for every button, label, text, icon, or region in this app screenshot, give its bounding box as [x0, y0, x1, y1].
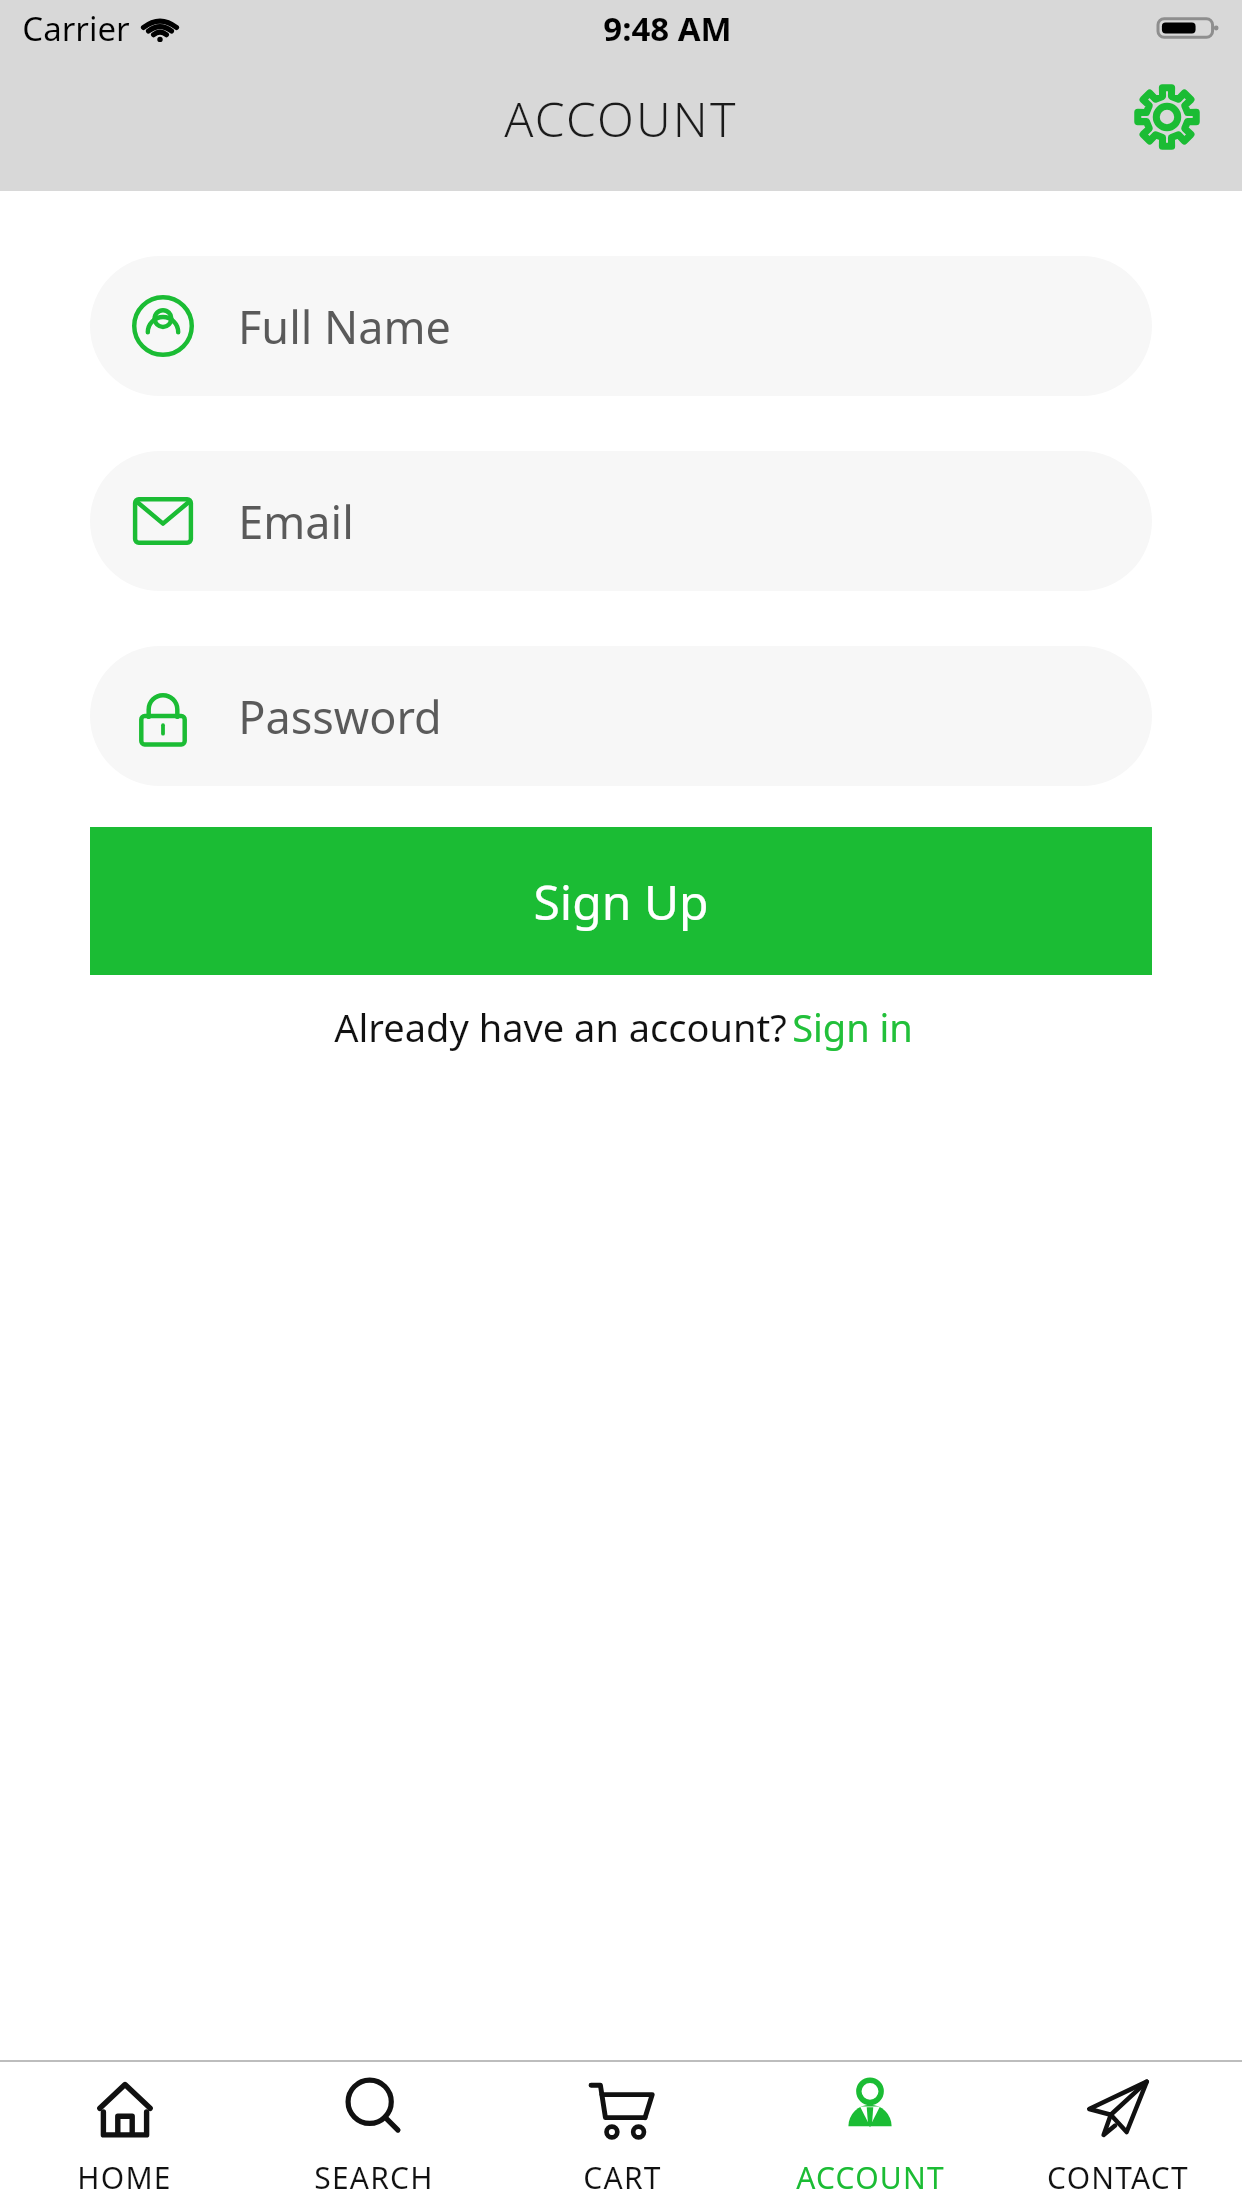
button[interactable]: Email — [90, 451, 1152, 591]
staticText: SEARCH — [314, 2157, 434, 2198]
staticText: Password — [238, 686, 442, 747]
staticText: HOME — [77, 2157, 172, 2198]
button[interactable]: CONTACT — [994, 2073, 1242, 2198]
staticText: Sign in — [792, 1001, 913, 1053]
staticText: Already have an account? — [329, 1001, 792, 1053]
staticText: Carrier — [22, 6, 130, 51]
staticText: Full Name — [238, 296, 451, 357]
button[interactable]: HOME — [0, 2073, 249, 2198]
button[interactable]: Full Name — [90, 256, 1152, 396]
staticText: ACCOUNT — [796, 2157, 945, 2198]
button[interactable]: Sign Up — [90, 827, 1152, 975]
staticText: CONTACT — [1047, 2157, 1189, 2198]
staticText: 9:48 AM — [603, 6, 732, 51]
staticText: Sign Up — [533, 869, 709, 934]
button[interactable]: SEARCH — [249, 2073, 498, 2198]
button[interactable]: Password — [90, 646, 1152, 786]
staticText: ACCOUNT — [504, 86, 738, 151]
button[interactable]: CART — [498, 2073, 746, 2198]
staticText: CART — [583, 2157, 662, 2198]
button[interactable]: Settings — [1130, 80, 1204, 154]
staticText: Email — [238, 491, 354, 552]
button[interactable]: ACCOUNT — [746, 2073, 994, 2198]
button[interactable]: Sign in — [792, 1001, 913, 1053]
